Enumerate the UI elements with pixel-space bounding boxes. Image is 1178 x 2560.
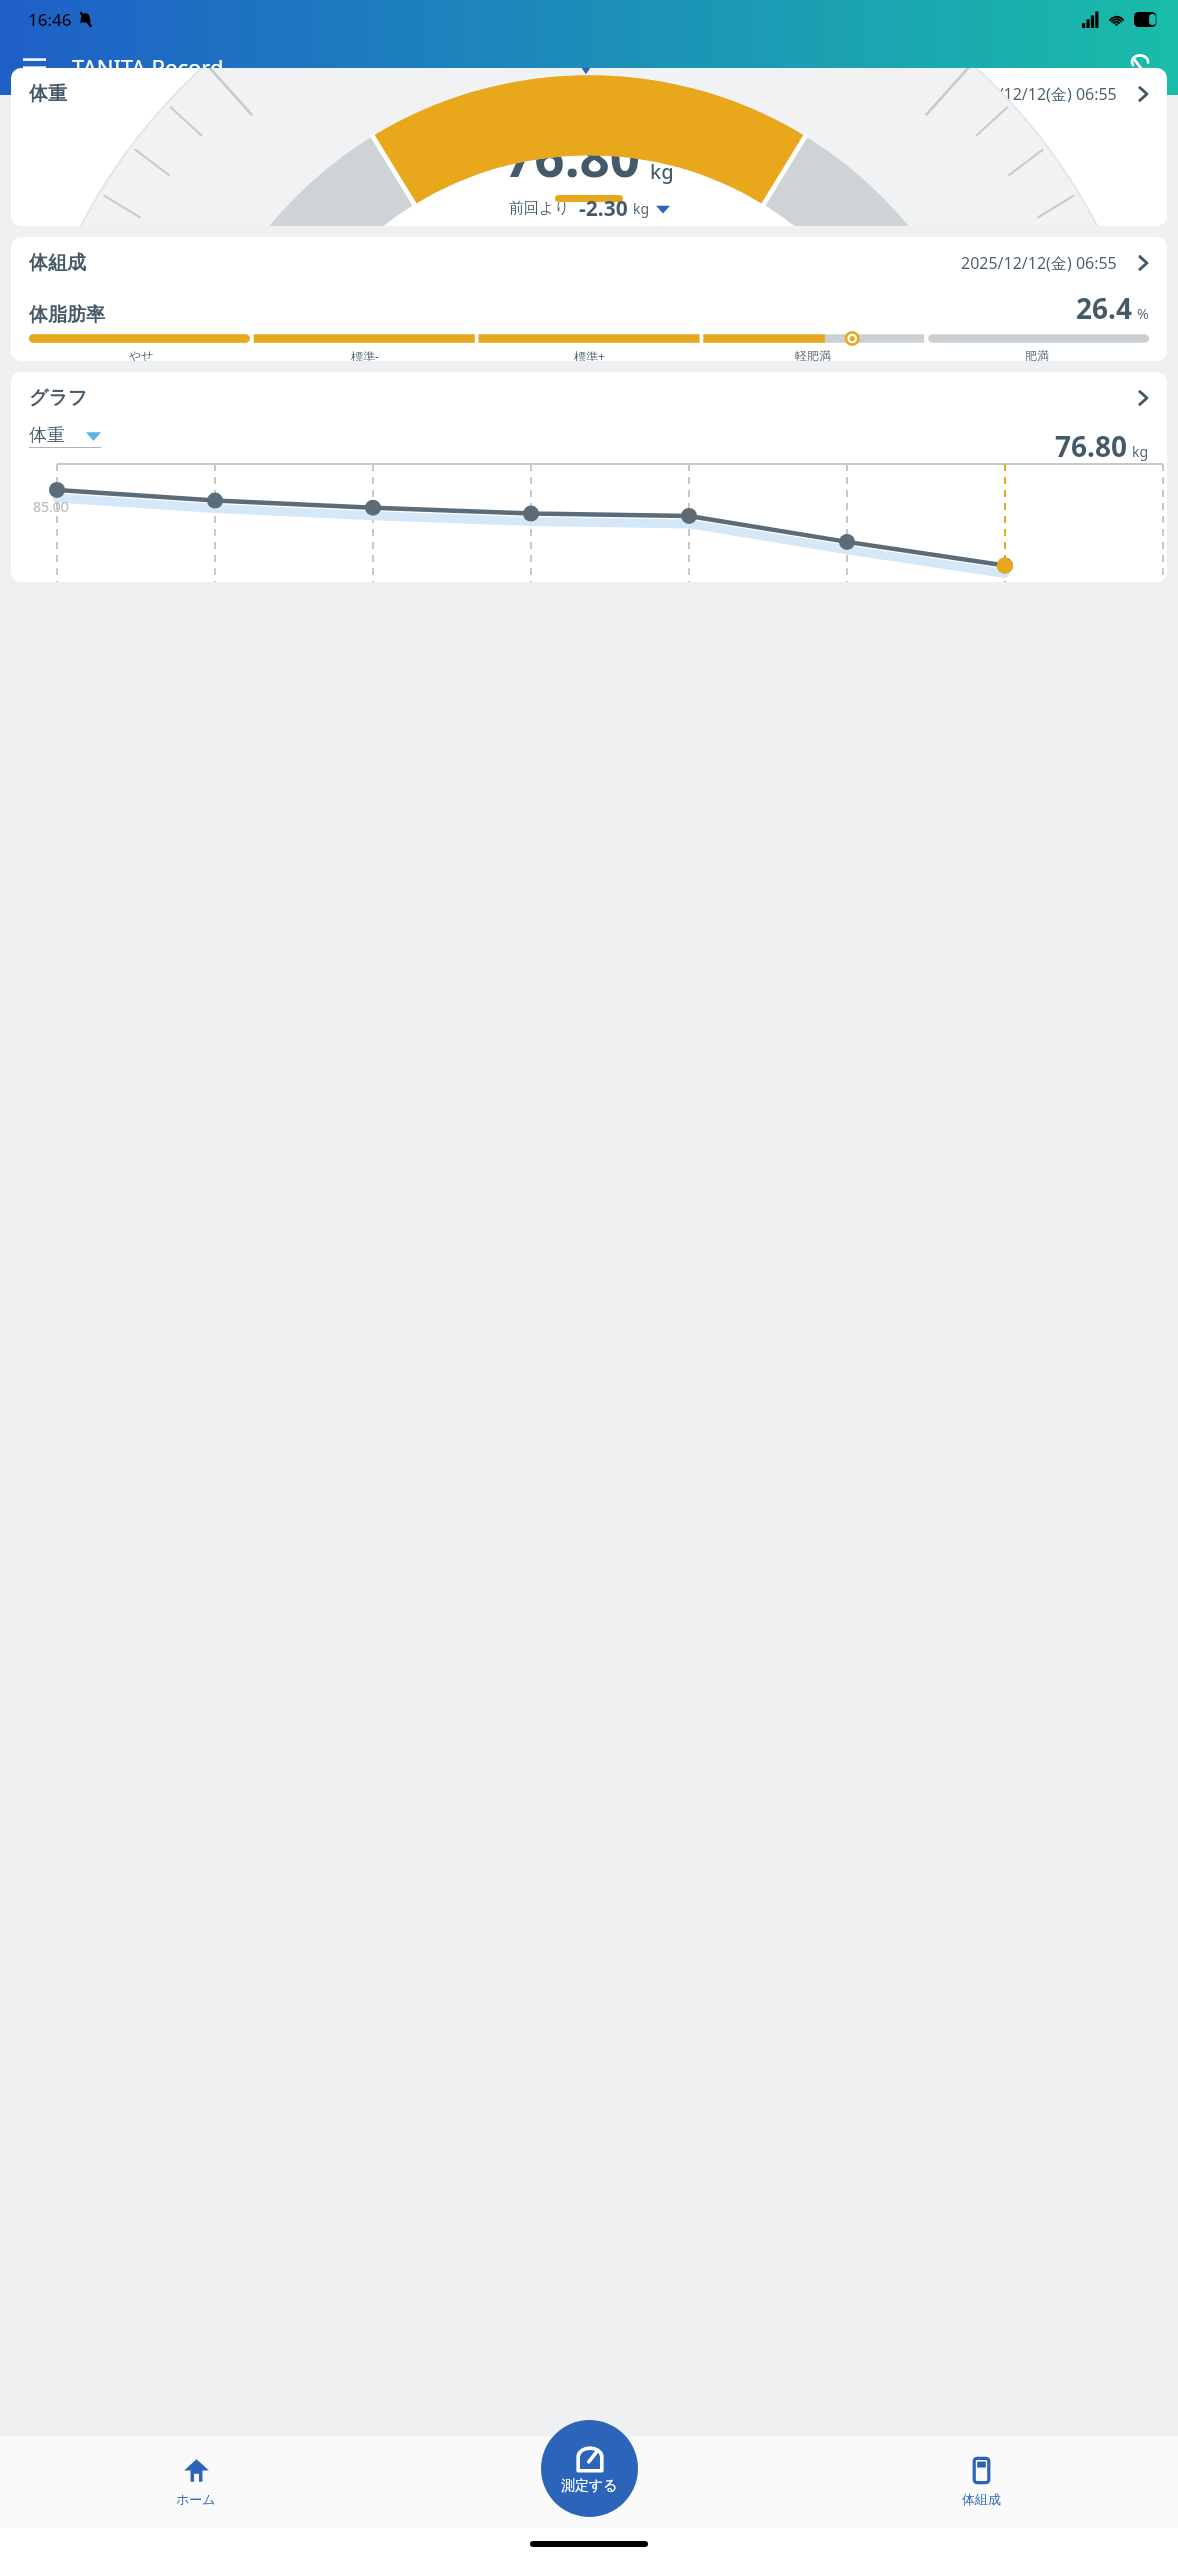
staticText: 前回より	[509, 199, 570, 218]
button[interactable]: ホーム	[0, 2436, 392, 2528]
staticText: 軽肥満	[795, 348, 831, 361]
button[interactable]: 体重	[11, 68, 1167, 120]
staticText: kg	[650, 158, 674, 185]
button[interactable]: Sync	[1116, 43, 1164, 91]
staticText: 76.80	[1055, 427, 1127, 465]
staticText: TANITA Record	[72, 52, 224, 82]
staticText: 標準+	[574, 348, 605, 361]
staticText: %	[1137, 304, 1149, 323]
button[interactable]: 体組成	[11, 237, 1167, 361]
other: Weight detail	[1133, 84, 1153, 104]
other: Body composition detail	[1133, 253, 1153, 273]
staticText: -2.30	[579, 194, 628, 223]
button[interactable]: 体組成	[11, 237, 1167, 289]
staticText: kg	[1132, 442, 1149, 461]
staticText: やせ	[129, 348, 154, 361]
staticText: 2025/12/12(金) 06:55	[961, 83, 1117, 105]
button[interactable]: Menu	[10, 43, 58, 91]
staticText: 体重	[29, 424, 65, 447]
staticText: 測定する	[561, 2477, 618, 2495]
staticText: 76.80	[504, 120, 641, 192]
button[interactable]: グラフ	[11, 372, 1167, 582]
button[interactable]: 体重	[29, 424, 101, 447]
button[interactable]: グラフ	[11, 372, 1167, 424]
staticText: 体組成	[962, 2491, 1001, 2507]
staticText: グラフ	[29, 386, 88, 410]
button[interactable]: 体重	[11, 68, 1167, 226]
staticText: ホーム	[176, 2491, 216, 2507]
other: Graph detail	[1133, 388, 1153, 408]
staticText: 85.00	[33, 497, 69, 516]
staticText: 26.4	[1076, 289, 1132, 327]
staticText: 体組成	[29, 251, 86, 275]
staticText: 2025/12/12(金) 06:55	[961, 252, 1117, 274]
staticText: 標準-	[351, 348, 379, 361]
button[interactable]: 体組成	[785, 2436, 1178, 2528]
staticText: 16:46	[28, 8, 72, 31]
staticText: kg	[633, 199, 650, 218]
staticText: 肥満	[1025, 348, 1049, 361]
button[interactable]: 測定する	[541, 2420, 638, 2517]
staticText: 体重	[29, 82, 67, 106]
staticText: 体脂肪率	[29, 303, 105, 327]
